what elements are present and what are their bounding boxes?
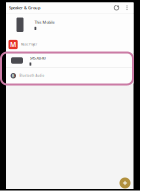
- staticText: M: [10, 40, 16, 49]
- button[interactable]: Add device: [119, 177, 130, 188]
- button[interactable]: More options: [122, 2, 131, 13]
- staticText: Speaker & Group: [9, 5, 40, 10]
- button[interactable]: Refresh: [110, 2, 122, 13]
- staticText: This Mobile: [34, 19, 54, 25]
- staticText: Music Player: [21, 43, 37, 46]
- button[interactable]: This Mobile: [6, 13, 133, 36]
- button[interactable]: M: [6, 36, 133, 53]
- staticText: Bluetooth Audio: [19, 74, 44, 77]
- button[interactable]: B: [6, 68, 133, 83]
- staticText: SRS-XB40: [29, 55, 45, 61]
- button[interactable]: SRS-XB40: [6, 53, 133, 67]
- staticText: B: [12, 73, 15, 78]
